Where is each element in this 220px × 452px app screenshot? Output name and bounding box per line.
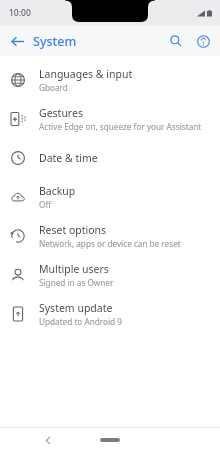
button[interactable]: Gestures xyxy=(0,99,220,138)
button[interactable]: Multiple users xyxy=(0,255,220,294)
staticText: Gestures xyxy=(39,106,83,120)
staticText: System update xyxy=(39,301,113,315)
staticText: Updated to Android 9 xyxy=(39,316,122,327)
staticText: Active Edge on, squeeze for your Assista… xyxy=(39,121,202,132)
staticText: System xyxy=(33,33,77,50)
staticText: Off xyxy=(39,199,52,210)
staticText: 10:00 xyxy=(9,7,31,19)
staticText: Date & time xyxy=(39,151,98,165)
button[interactable]: System update xyxy=(0,294,220,333)
staticText: Multiple users xyxy=(39,262,109,276)
staticText: Gboard xyxy=(39,82,68,93)
button[interactable]: Backup xyxy=(0,177,220,216)
staticText: Languages & input xyxy=(39,67,133,81)
button[interactable]: Home xyxy=(93,432,127,448)
staticText: Signed in as Owner xyxy=(39,277,114,288)
staticText: Reset options xyxy=(39,223,107,237)
staticText: Network, apps or device can be reset xyxy=(39,238,181,249)
button[interactable]: Help xyxy=(191,29,215,53)
button[interactable]: Search xyxy=(164,29,188,53)
button[interactable]: Back xyxy=(5,29,29,53)
button[interactable]: Date & time xyxy=(0,138,220,177)
staticText: Backup xyxy=(39,184,76,198)
button[interactable]: Languages & input xyxy=(0,60,220,99)
button[interactable]: Back xyxy=(38,430,58,450)
button[interactable]: Reset options xyxy=(0,216,220,255)
